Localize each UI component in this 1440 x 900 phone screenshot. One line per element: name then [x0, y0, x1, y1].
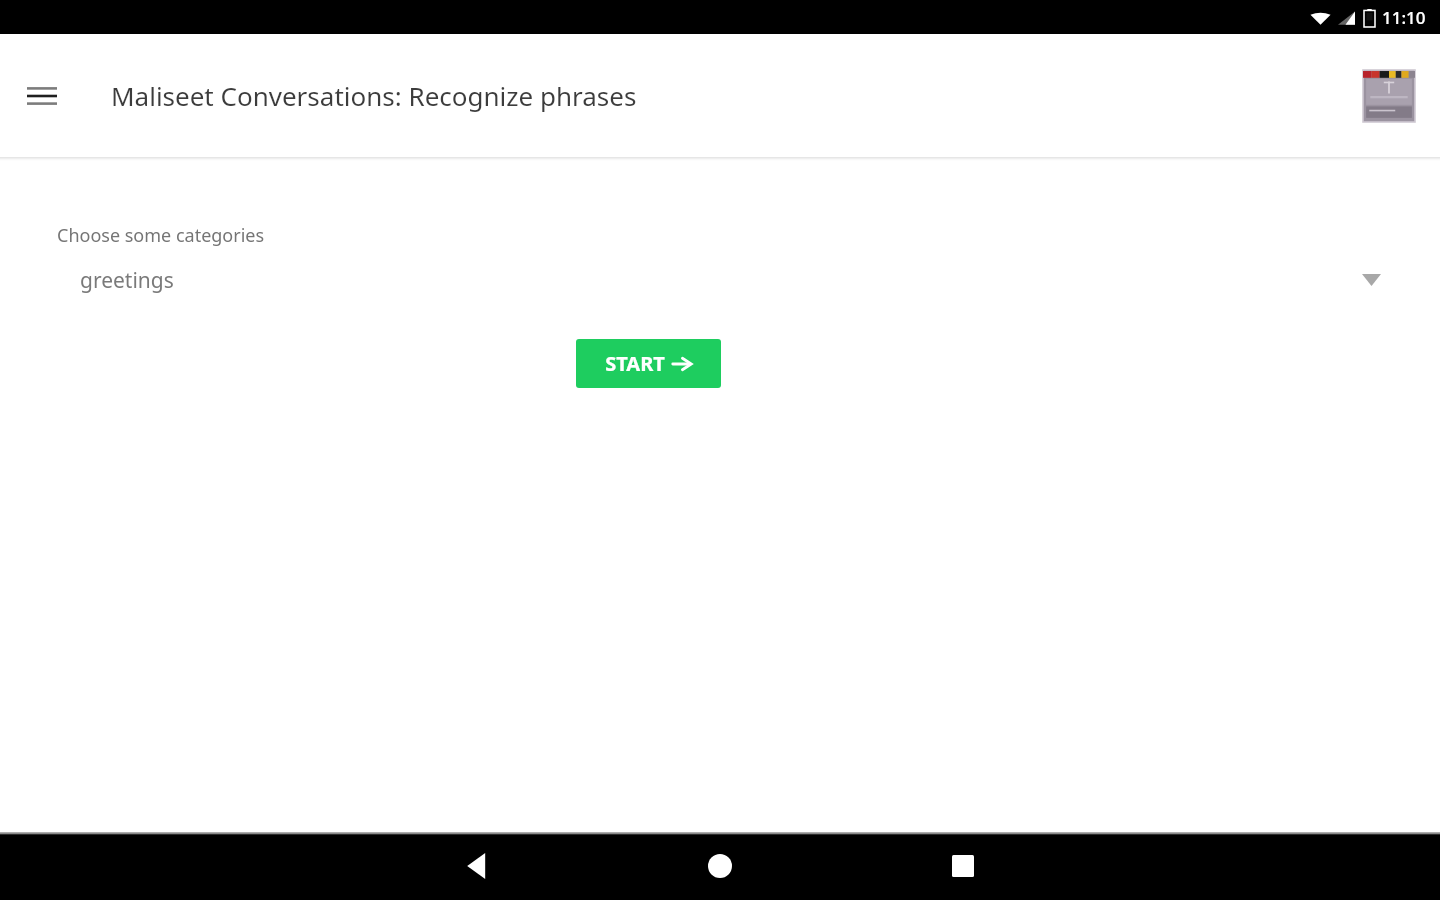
button[interactable]: Open navigation menu: [14, 68, 70, 124]
staticText: greetings: [80, 266, 174, 295]
button[interactable]: START: [576, 339, 721, 388]
button[interactable]: greetings: [0, 254, 1440, 306]
staticText: 11:10: [1382, 6, 1426, 29]
staticText: START: [605, 350, 665, 377]
button[interactable]: Back: [430, 832, 526, 900]
staticText: Choose some categories: [57, 223, 265, 248]
button[interactable]: Home: [672, 832, 768, 900]
button[interactable]: Recent apps: [915, 832, 1011, 900]
button[interactable]: App info: [1362, 69, 1416, 123]
staticText: Maliseet Conversations: Recognize phrase…: [111, 78, 637, 113]
